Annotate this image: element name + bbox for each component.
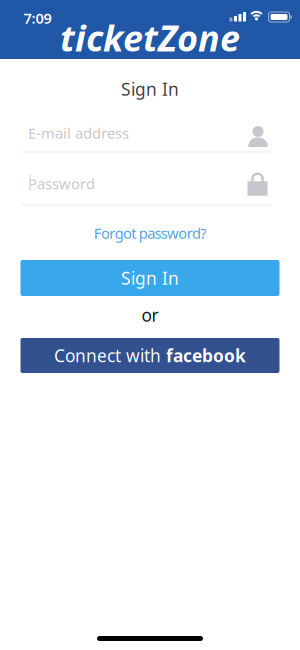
- staticText: ticketZone: [60, 14, 240, 61]
- staticText: Password: [28, 174, 95, 193]
- button[interactable]: Forgot password?: [70, 222, 230, 244]
- button[interactable]: Connect with facebook: [20, 338, 279, 373]
- staticText: Forgot password?: [94, 223, 206, 243]
- button[interactable]: E-mail address: [0, 115, 300, 158]
- staticText: Sign In: [121, 77, 179, 100]
- button[interactable]: Password: [0, 166, 300, 211]
- staticText: E-mail address: [28, 123, 129, 143]
- staticText: Connect with facebook: [54, 344, 246, 367]
- staticText: Sign In: [121, 266, 179, 289]
- button[interactable]: Sign In: [20, 260, 279, 296]
- staticText: 7:09: [23, 8, 51, 28]
- staticText: or: [141, 303, 158, 326]
